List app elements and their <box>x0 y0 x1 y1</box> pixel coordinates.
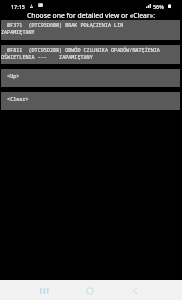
button[interactable]: Home <box>76 280 104 300</box>
staticText: 0F371 (DTC95D600) BRAK POŁĄCZENIA LIN <box>1 22 180 29</box>
staticText: 0F811 (DTC95D288) OBWÓD CZUJNIKA OPADÓW/… <box>1 47 180 54</box>
button[interactable]: <Up> <box>1 69 180 87</box>
staticText: 17:15 <box>11 3 25 10</box>
button[interactable]: 0F371 (DTC95D600) BRAK POŁĄCZENIA LIN <box>1 20 180 40</box>
button[interactable]: Back <box>121 280 149 300</box>
staticText: <Up> <box>1 73 180 80</box>
staticText: ZAPAMIĘTANY <box>1 29 180 36</box>
staticText: 56% <box>153 3 164 10</box>
button[interactable]: 0F811 (DTC95D288) OBWÓD CZUJNIKA OPADÓW/… <box>1 45 180 64</box>
staticText: <Clear> <box>1 96 180 103</box>
button[interactable]: <Clear> <box>1 92 180 110</box>
staticText: OŚWIETLENIA --- ZAPAMIĘTANY <box>1 54 180 61</box>
button[interactable]: Recents <box>30 280 58 300</box>
staticText: Choose one for detailed view or «Clear»: <box>27 11 156 19</box>
